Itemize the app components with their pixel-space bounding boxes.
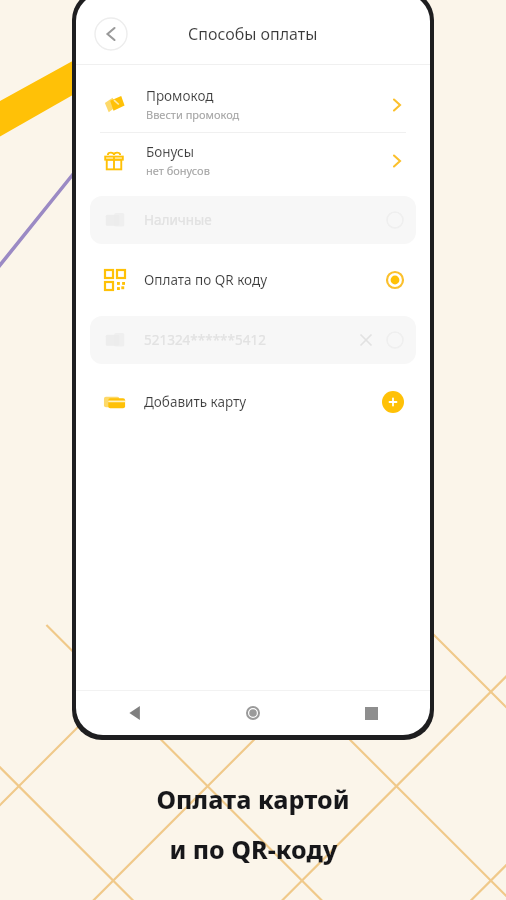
button[interactable]: Домой [238,698,268,728]
staticText: нет бонусов [146,163,210,178]
staticText: и по QR-коду [169,832,338,866]
button[interactable]: 521324******5412 [90,316,416,364]
staticText: Наличные [144,211,386,229]
button[interactable]: Оплата по QR коду [90,256,416,304]
staticText: Оплата картой [156,782,350,816]
staticText: Способы оплаты [188,23,318,45]
staticText: Промокод [146,87,214,105]
other: Добавить [382,391,404,413]
other: Удалить [358,332,374,348]
button[interactable]: Добавить карту [76,376,430,428]
button[interactable]: Бонусы [76,133,430,188]
staticText: Ввести промокод [146,107,240,122]
button[interactable]: Промокод [76,77,430,132]
staticText: Бонусы [146,143,194,161]
button[interactable]: Последние [356,698,386,728]
staticText: Добавить карту [144,393,382,411]
staticText: 521324******5412 [144,331,358,349]
staticText: Оплата по QR коду [144,271,386,289]
button[interactable]: Назад [93,16,129,52]
button[interactable]: Назад [120,698,150,728]
